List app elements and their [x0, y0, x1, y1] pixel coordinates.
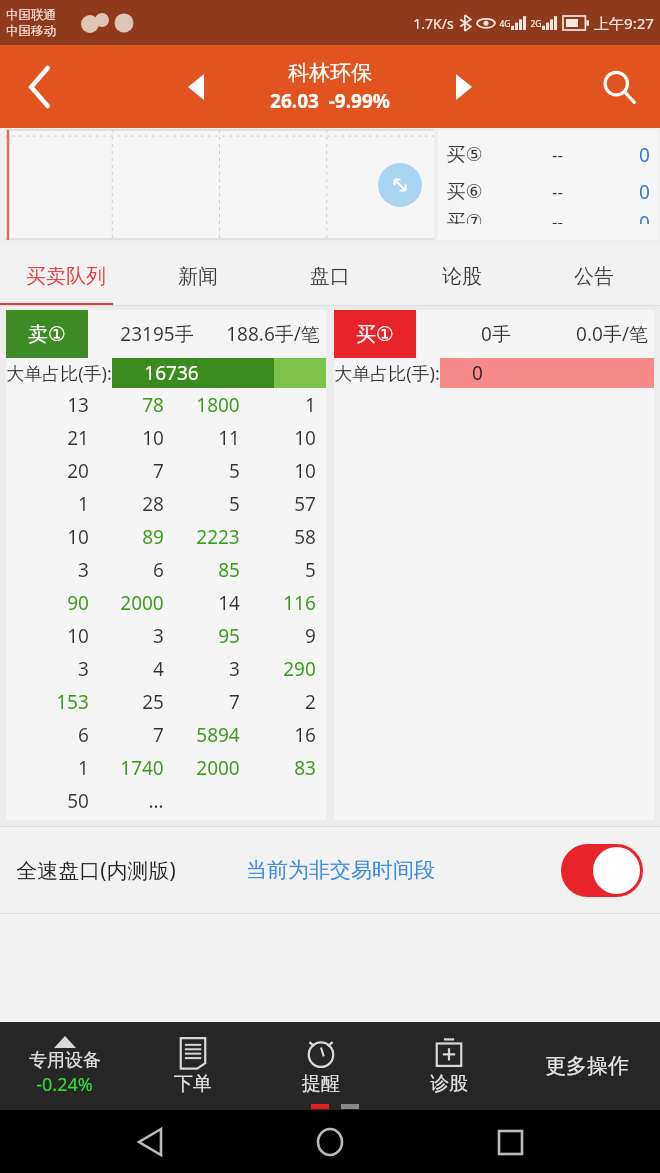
- staticText: 7: [153, 458, 164, 484]
- staticText: 25: [142, 689, 164, 715]
- staticText: 大单占比(手):: [334, 361, 440, 386]
- staticText: --: [552, 210, 563, 224]
- staticText: 7: [229, 689, 240, 715]
- button[interactable]: 买⑤: [438, 130, 658, 240]
- staticText: 78: [142, 392, 164, 418]
- staticText: 95: [218, 623, 240, 649]
- staticText: 14: [218, 590, 240, 616]
- staticText: 全速盘口(内测版): [16, 856, 176, 885]
- staticText: 10: [67, 524, 89, 550]
- button[interactable]: 论股: [396, 246, 528, 306]
- staticText: 提醒: [302, 1072, 340, 1096]
- staticText: 买⑥: [446, 180, 483, 204]
- staticText: 10: [294, 458, 316, 484]
- staticText: 9: [305, 623, 316, 649]
- staticText: 中国移动: [6, 23, 56, 39]
- staticText: 5: [229, 491, 240, 517]
- button[interactable]: Previous stock: [165, 57, 227, 117]
- staticText: 3: [229, 656, 240, 682]
- staticText: 新闻: [178, 264, 218, 289]
- button[interactable]: 公告: [528, 246, 660, 306]
- staticText: 2223: [196, 524, 240, 550]
- button[interactable]: Toggle full speed: [561, 844, 643, 897]
- button[interactable]: Search: [578, 45, 660, 128]
- button[interactable]: 买①: [334, 310, 654, 820]
- staticText: 20: [67, 458, 89, 484]
- staticText: 26.03 -9.99%: [270, 88, 390, 114]
- staticText: 0.0手/笔: [576, 321, 648, 347]
- staticText: 买①: [356, 322, 394, 347]
- staticText: 1: [78, 755, 89, 781]
- staticText: 更多操作: [545, 1053, 629, 1079]
- button[interactable]: 下单: [129, 1022, 257, 1110]
- button[interactable]: 买卖队列: [0, 246, 132, 306]
- button[interactable]: Home: [300, 1112, 360, 1172]
- staticText: 当前为非交易时间段: [246, 857, 435, 883]
- button[interactable]: Back: [0, 45, 80, 128]
- button[interactable]: 专用设备: [0, 1022, 129, 1110]
- staticText: 10: [294, 425, 316, 451]
- staticText: 0: [472, 360, 483, 386]
- staticText: 卖①: [28, 322, 66, 347]
- button[interactable]: Recents: [480, 1112, 540, 1172]
- staticText: 大单占比(手):: [6, 361, 112, 386]
- staticText: 中国联通: [6, 7, 56, 23]
- staticText: 0: [639, 210, 650, 224]
- staticText: 诊股: [430, 1072, 468, 1096]
- button[interactable]: Expand chart: [5, 130, 434, 240]
- button[interactable]: 诊股: [385, 1022, 513, 1110]
- staticText: 买⑦: [446, 210, 483, 224]
- staticText: 5: [305, 557, 316, 583]
- staticText: 50: [67, 788, 89, 814]
- staticText: 28: [142, 491, 164, 517]
- staticText: 2: [305, 689, 316, 715]
- button[interactable]: 卖①: [6, 310, 326, 820]
- staticText: 买⑤: [446, 143, 483, 167]
- button[interactable]: 盘口: [264, 246, 396, 306]
- button[interactable]: 提醒: [257, 1022, 385, 1110]
- staticText: 科林环保: [288, 60, 372, 86]
- staticText: 盘口: [310, 264, 350, 289]
- staticText: 上午9:27: [594, 13, 654, 33]
- button[interactable]: 新闻: [132, 246, 264, 306]
- staticText: -0.24%: [36, 1072, 93, 1097]
- staticText: 11: [218, 425, 240, 451]
- staticText: 4: [153, 656, 164, 682]
- staticText: 5894: [196, 722, 240, 748]
- staticText: 90: [67, 590, 89, 616]
- staticText: 57: [294, 491, 316, 517]
- staticText: 290: [283, 656, 316, 682]
- staticText: 买卖队列: [26, 264, 106, 289]
- staticText: 论股: [442, 264, 482, 289]
- staticText: 10: [142, 425, 164, 451]
- staticText: 3: [78, 557, 89, 583]
- staticText: 188.6手/笔: [226, 321, 320, 347]
- staticText: 0: [639, 142, 650, 168]
- button[interactable]: 科林环保: [270, 60, 390, 114]
- staticText: …: [148, 788, 164, 814]
- staticText: 公告: [574, 264, 614, 289]
- button[interactable]: Expand chart: [378, 163, 422, 207]
- staticText: 4G: [499, 18, 511, 30]
- staticText: 116: [283, 590, 316, 616]
- staticText: 7: [153, 722, 164, 748]
- staticText: 6: [153, 557, 164, 583]
- staticText: --: [552, 180, 563, 203]
- staticText: 1.7K/s: [413, 14, 454, 33]
- staticText: 21: [67, 425, 89, 451]
- staticText: 专用设备: [29, 1049, 101, 1072]
- staticText: 3: [153, 623, 164, 649]
- staticText: 16: [294, 722, 316, 748]
- button[interactable]: Back: [120, 1112, 180, 1172]
- staticText: 89: [142, 524, 164, 550]
- staticText: 23195手: [120, 321, 194, 347]
- button[interactable]: 更多操作: [513, 1022, 660, 1110]
- staticText: --: [552, 143, 563, 166]
- staticText: 2000: [120, 590, 164, 616]
- staticText: 1: [78, 491, 89, 517]
- staticText: 1740: [120, 755, 164, 781]
- staticText: 13: [67, 392, 89, 418]
- staticText: 3: [78, 656, 89, 682]
- button[interactable]: Next stock: [433, 57, 495, 117]
- staticText: 83: [294, 755, 316, 781]
